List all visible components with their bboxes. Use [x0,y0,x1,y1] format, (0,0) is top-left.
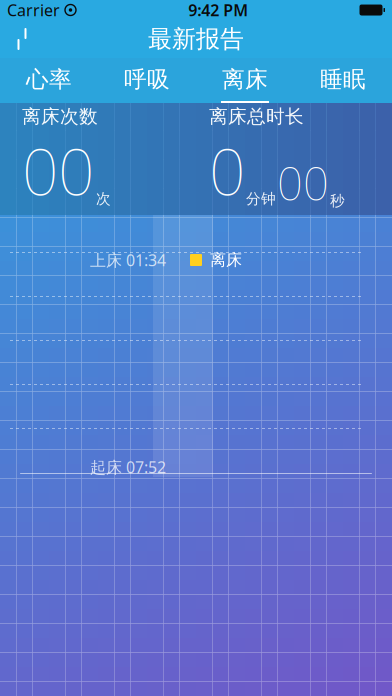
staticText: 离床 [222,66,268,93]
staticText: 睡眠 [320,66,366,93]
staticText: 9:42 PM [188,0,248,21]
staticText: 秒 [330,192,345,210]
staticText: 分钟 [246,190,276,208]
staticText: 心率 [26,66,72,93]
button[interactable]: Back [0,20,44,58]
staticText: 离床 [210,250,242,270]
staticText: 上床 01:34 [90,249,166,271]
staticText: 0 [209,128,245,213]
button[interactable]: 离床 [196,58,294,103]
staticText: 次 [96,190,111,208]
button[interactable]: 呼吸 [98,58,196,103]
staticText: 离床总时长 [209,105,304,128]
button[interactable]: 心率 [0,58,98,103]
staticText: 呼吸 [124,66,170,93]
staticText: 00 [277,153,329,213]
staticText: 00 [22,128,94,213]
staticText: 离床次数 [22,105,98,128]
staticText: Carrier [7,0,60,21]
staticText: 最新报告 [148,24,244,54]
button[interactable]: 睡眠 [294,58,392,103]
staticText: 起床 07:52 [90,456,166,478]
